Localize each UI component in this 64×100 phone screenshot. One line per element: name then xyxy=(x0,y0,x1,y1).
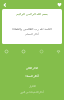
button[interactable]: أذكار المساء xyxy=(0,73,64,79)
staticText: الذكر التالي xyxy=(26,66,38,69)
staticText: التكرار xyxy=(29,85,36,88)
staticText: الحمد لله رب العالمين والصلاة xyxy=(2,27,62,31)
button[interactable]: Share xyxy=(19,47,27,55)
button[interactable]: Favourite xyxy=(54,47,62,55)
staticText: أذكار الاستيقاظ من النوم xyxy=(20,91,44,94)
staticText: أذكار المساء xyxy=(25,74,39,78)
staticText: بسم الله الرحمن الرحيم xyxy=(2,12,62,16)
button[interactable]: الذكر التالي xyxy=(0,64,64,70)
button[interactable]: Counter xyxy=(2,47,10,55)
button[interactable]: Copy xyxy=(37,47,45,55)
button[interactable]: Add to favourites xyxy=(55,0,64,9)
button[interactable]: التكرار xyxy=(0,83,64,89)
button[interactable]: Back xyxy=(0,0,9,9)
staticText: أذكار المسلم xyxy=(2,32,62,36)
button[interactable]: أذكار الاستيقاظ من النوم xyxy=(0,89,64,95)
